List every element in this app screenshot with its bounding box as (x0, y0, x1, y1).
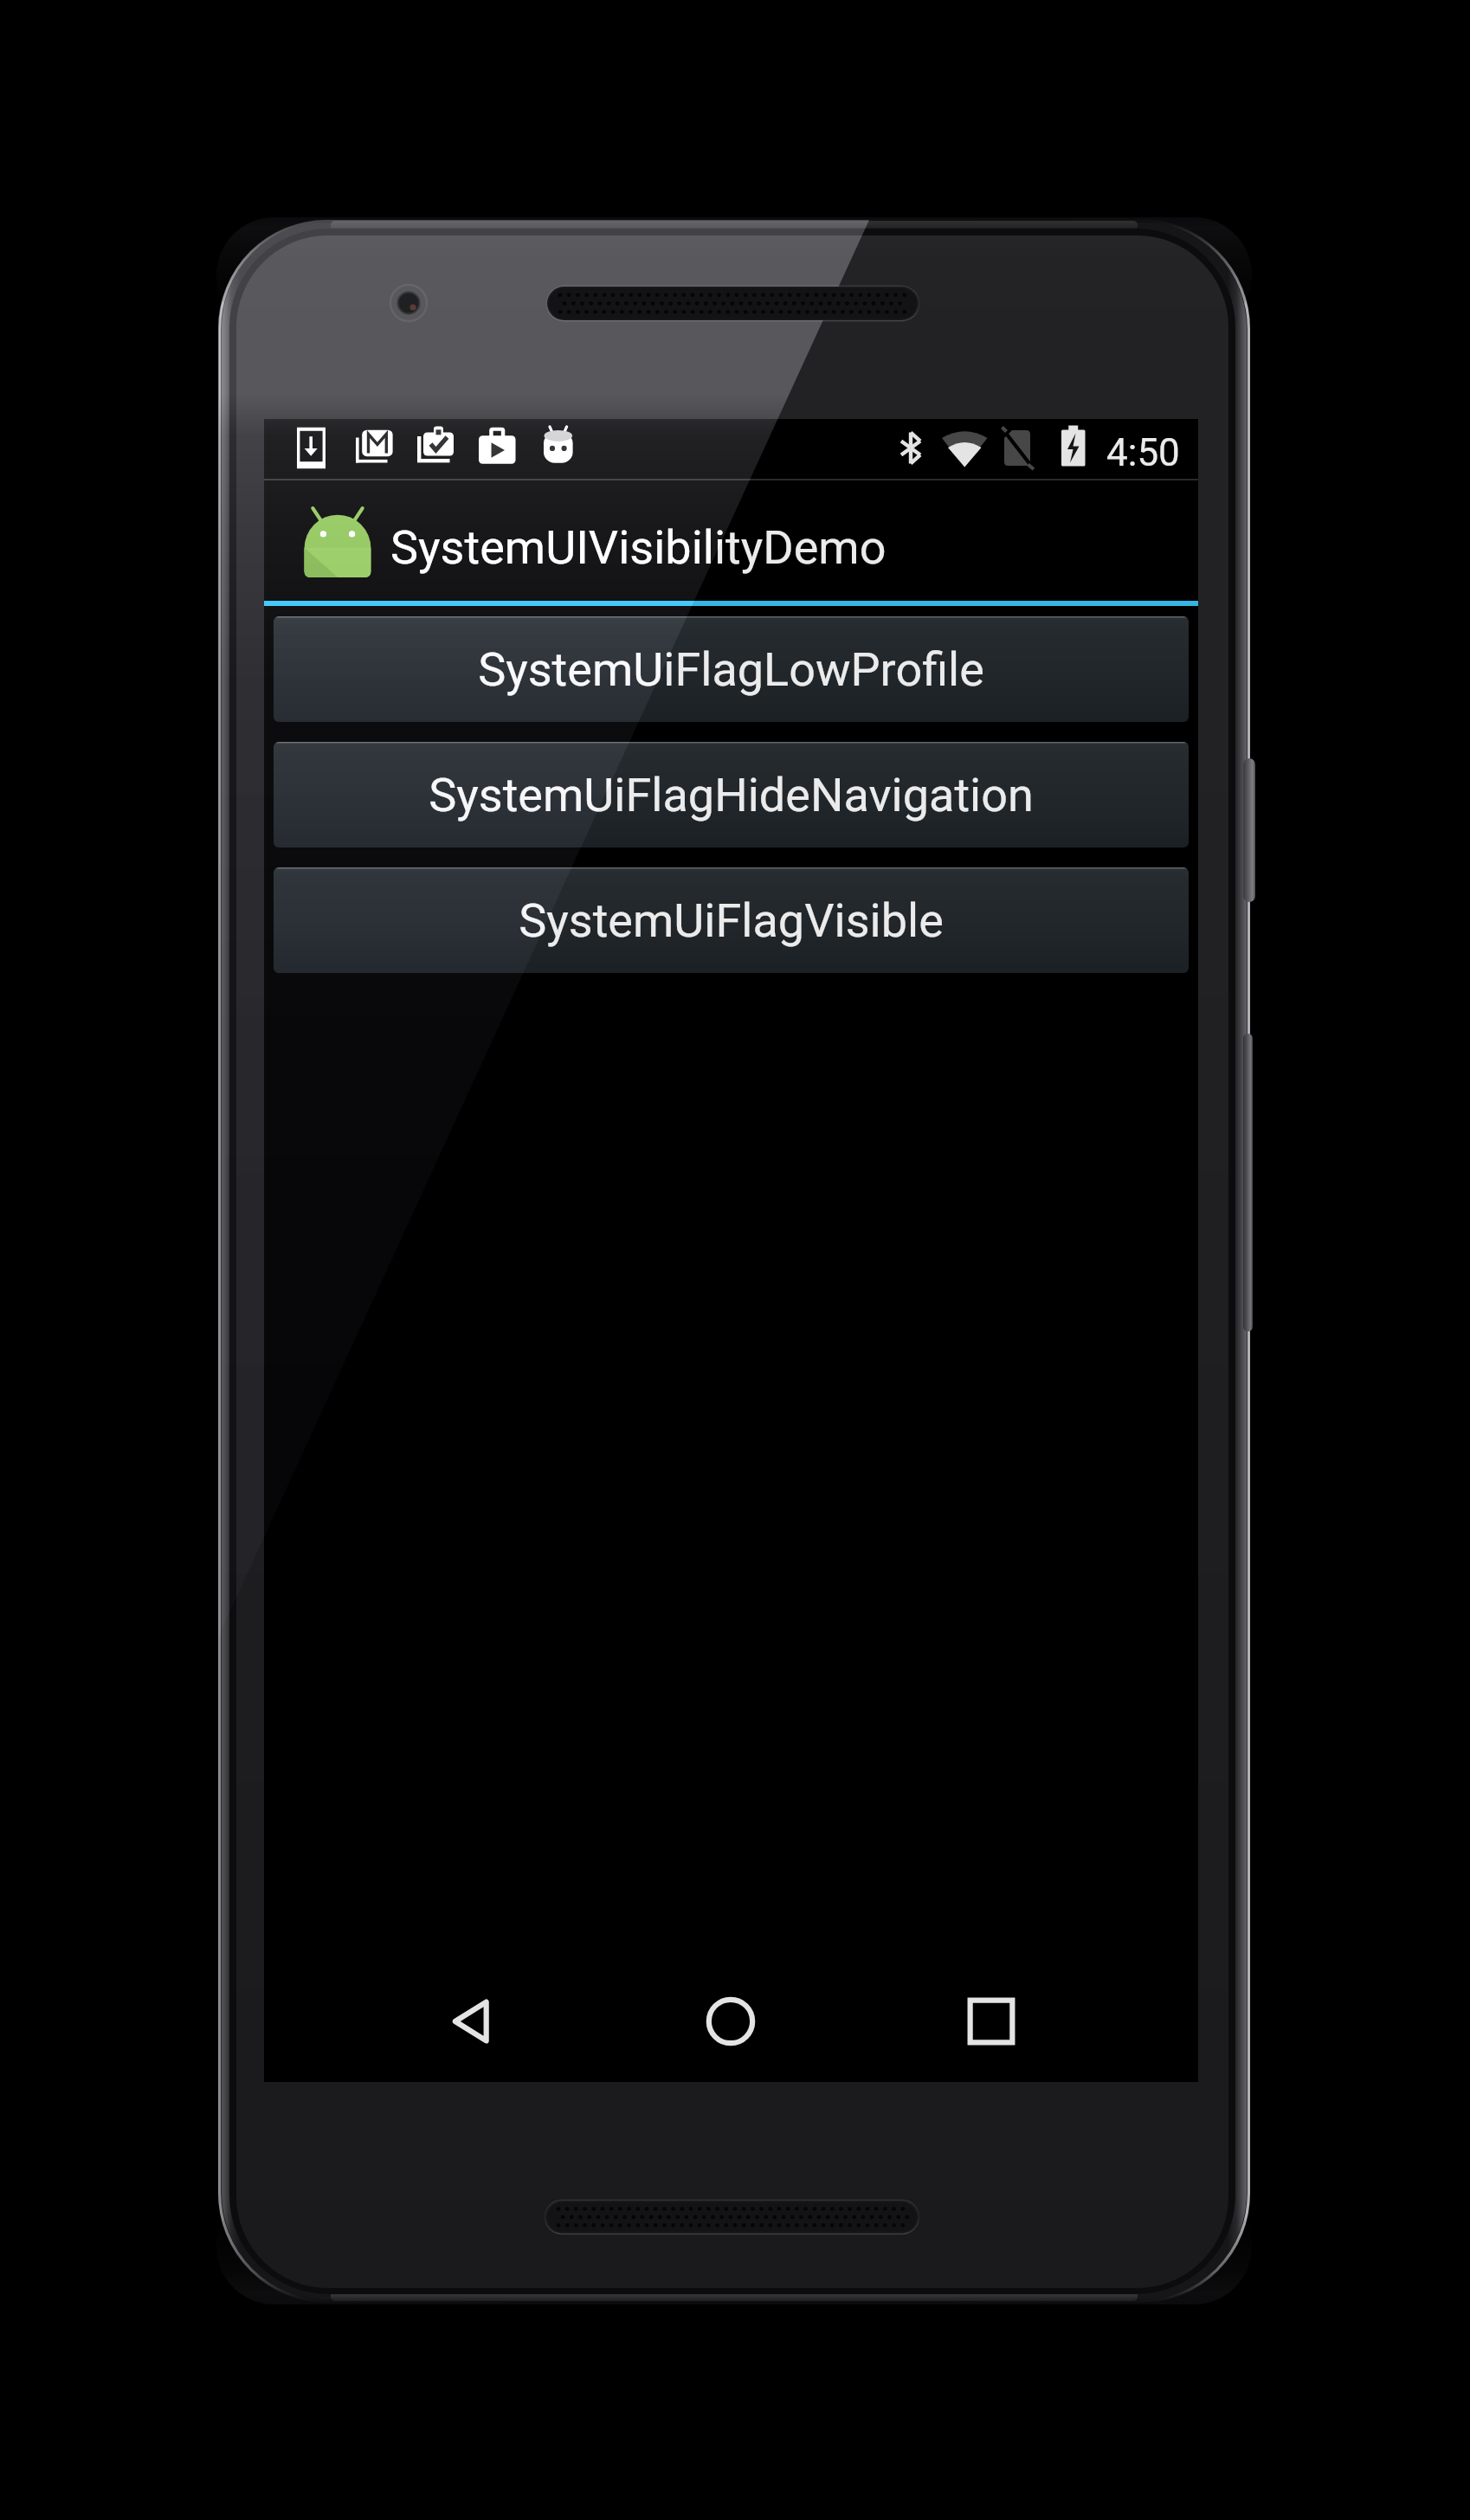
staticText: SystemUiFlagVisible (519, 893, 944, 948)
staticText: SystemUiFlagHideNavigation (429, 768, 1034, 822)
button[interactable]: SystemUiFlagLowProfile (274, 616, 1189, 722)
button[interactable]: Back (412, 1956, 533, 2086)
button[interactable]: Home (670, 1956, 791, 2086)
staticText: 4:50 (1106, 430, 1180, 475)
staticText: SystemUIVisibilityDemo (390, 520, 887, 575)
button[interactable]: SystemUiFlagVisible (274, 867, 1189, 973)
staticText: SystemUiFlagLowProfile (478, 642, 984, 697)
button[interactable]: SystemUIVisibilityDemo (264, 480, 1198, 601)
button[interactable]: Recents (931, 1956, 1052, 2086)
button[interactable]: SystemUiFlagHideNavigation (274, 742, 1189, 848)
